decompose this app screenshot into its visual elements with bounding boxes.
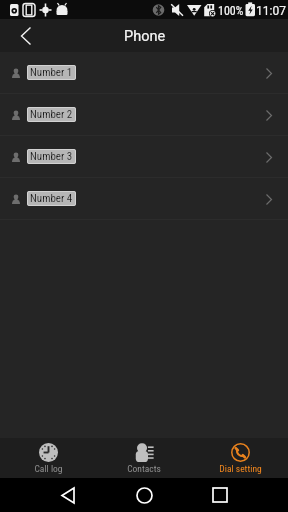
- button[interactable]: Recent apps: [200, 478, 240, 512]
- button[interactable]: Contacts: [96, 438, 192, 478]
- staticText: Number 1: [30, 66, 73, 79]
- staticText: 11:07: [256, 4, 286, 18]
- staticText: Dial setting: [219, 463, 262, 474]
- button[interactable]: Dial setting: [192, 438, 288, 478]
- button[interactable]: Number 3: [0, 136, 288, 178]
- staticText: Contacts: [127, 463, 161, 474]
- button[interactable]: Number 4: [0, 178, 288, 220]
- button[interactable]: Back: [48, 478, 88, 512]
- staticText: Number 4: [30, 192, 73, 205]
- button[interactable]: Back: [0, 19, 52, 52]
- staticText: Phone: [124, 28, 166, 45]
- button[interactable]: Home: [124, 478, 164, 512]
- staticText: 100%: [218, 4, 244, 18]
- staticText: Call log: [34, 463, 63, 474]
- button[interactable]: Number 2: [0, 94, 288, 136]
- staticText: Number 2: [30, 108, 73, 121]
- staticText: Number 3: [30, 150, 73, 163]
- button[interactable]: Number 1: [0, 52, 288, 94]
- button[interactable]: Call log: [0, 438, 96, 478]
